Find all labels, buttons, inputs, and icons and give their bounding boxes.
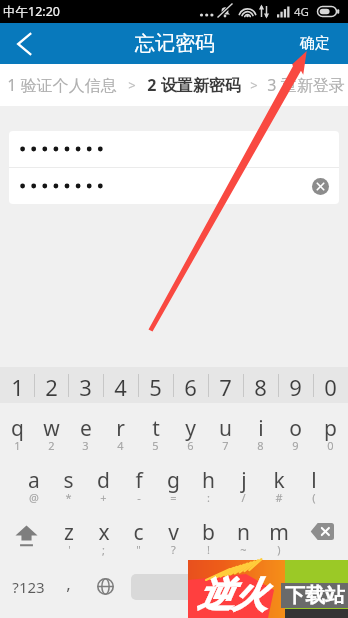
button[interactable]: Back (0, 23, 48, 64)
button[interactable]: , (57, 559, 79, 618)
button[interactable]: d (86, 455, 121, 507)
staticText: 8 (254, 372, 267, 402)
staticText: b (202, 518, 215, 547)
staticText: r (116, 414, 125, 443)
button[interactable]: 确定 (300, 34, 330, 53)
button[interactable]: ?123 (0, 559, 57, 618)
staticText: 6 (184, 372, 197, 402)
staticText: 1 (14, 438, 21, 453)
button[interactable]: a (17, 455, 51, 507)
staticText: * (65, 490, 72, 505)
staticText: 3 重新登录 (267, 74, 345, 96)
button[interactable]: o (278, 403, 313, 455)
button[interactable]: i (243, 403, 278, 455)
button[interactable]: Space (131, 574, 294, 600)
staticText: l (311, 466, 317, 495)
staticText: e (80, 414, 92, 443)
staticText: 5 (149, 372, 162, 402)
button[interactable]: u (208, 403, 243, 455)
button[interactable]: v (156, 507, 191, 559)
button[interactable]: 9 (278, 367, 313, 403)
button[interactable] (9, 131, 339, 167)
staticText: > (250, 76, 258, 94)
button[interactable]: l (296, 455, 331, 507)
button[interactable]: g (156, 455, 191, 507)
staticText: y (185, 414, 196, 443)
button[interactable]: 8 (243, 367, 278, 403)
staticText: a (28, 466, 40, 495)
button[interactable]: Backspace (296, 507, 348, 559)
button[interactable]: h (191, 455, 226, 507)
button[interactable]: q (0, 403, 34, 455)
button[interactable]: 7 (208, 367, 243, 403)
staticText: 0 (324, 372, 337, 402)
staticText: + (100, 490, 107, 505)
button[interactable]: Change language (79, 559, 131, 618)
staticText: 5 (152, 438, 159, 453)
button[interactable]: b (191, 507, 226, 559)
staticText: = (170, 490, 177, 505)
staticText: 中午12:20 (3, 3, 60, 20)
button[interactable]: f (121, 455, 156, 507)
button[interactable]: Clear text (308, 174, 332, 198)
button[interactable]: m (261, 507, 296, 559)
staticText: ' (68, 542, 71, 557)
staticText: f (135, 466, 143, 495)
staticText: 逆火 (197, 573, 267, 617)
staticText: ? (171, 542, 176, 557)
staticText: ( (312, 490, 316, 505)
staticText: o (289, 414, 302, 443)
staticText: @ (29, 490, 39, 505)
staticText: 下载站 (285, 583, 345, 608)
staticText: s (63, 466, 74, 495)
staticText: d (97, 466, 110, 495)
button[interactable]: w (34, 403, 68, 455)
button[interactable]: y (173, 403, 208, 455)
staticText: j (241, 466, 247, 495)
button[interactable]: s (51, 455, 86, 507)
button[interactable]: 1 (0, 367, 34, 403)
button[interactable]: 2 (34, 367, 68, 403)
button[interactable]: j (226, 455, 261, 507)
staticText: 忘记密码 (135, 31, 215, 56)
staticText: 4 (114, 372, 127, 402)
button[interactable]: Shift (0, 507, 52, 559)
button[interactable]: 3 (68, 367, 103, 403)
staticText: p (324, 414, 337, 443)
staticText: > (128, 76, 136, 94)
staticText: ! (207, 542, 210, 557)
staticText: h (202, 466, 215, 495)
staticText: 4 (117, 438, 124, 453)
staticText: 4G (294, 4, 309, 20)
button[interactable]: c (121, 507, 156, 559)
staticText: " (136, 542, 141, 557)
staticText: t (152, 414, 160, 443)
button[interactable]: Clear text (9, 168, 339, 204)
button[interactable]: p (313, 403, 348, 455)
staticText: 1 验证个人信息 (7, 74, 117, 96)
button[interactable]: 0 (313, 367, 348, 403)
staticText: / (241, 490, 246, 505)
staticText: ) (277, 542, 281, 557)
staticText: q (11, 414, 24, 443)
button[interactable]: k (261, 455, 296, 507)
button[interactable]: 5 (138, 367, 173, 403)
button[interactable]: e (68, 403, 103, 455)
button[interactable]: n (226, 507, 261, 559)
button[interactable]: t (138, 403, 173, 455)
staticText: 3 (82, 438, 89, 453)
staticText: 3 (79, 372, 92, 402)
staticText: g (167, 466, 180, 495)
button[interactable]: 4 (103, 367, 138, 403)
staticText: z (64, 518, 74, 547)
staticText: 6 (187, 438, 194, 453)
staticText: 8 (257, 438, 264, 453)
button[interactable]: z (52, 507, 86, 559)
button[interactable]: r (103, 403, 138, 455)
staticText: n (237, 518, 250, 547)
button[interactable]: 6 (173, 367, 208, 403)
staticText: 9 (292, 438, 299, 453)
button[interactable]: x (86, 507, 121, 559)
staticText: 1 (11, 372, 24, 402)
staticText: 7 (222, 438, 229, 453)
